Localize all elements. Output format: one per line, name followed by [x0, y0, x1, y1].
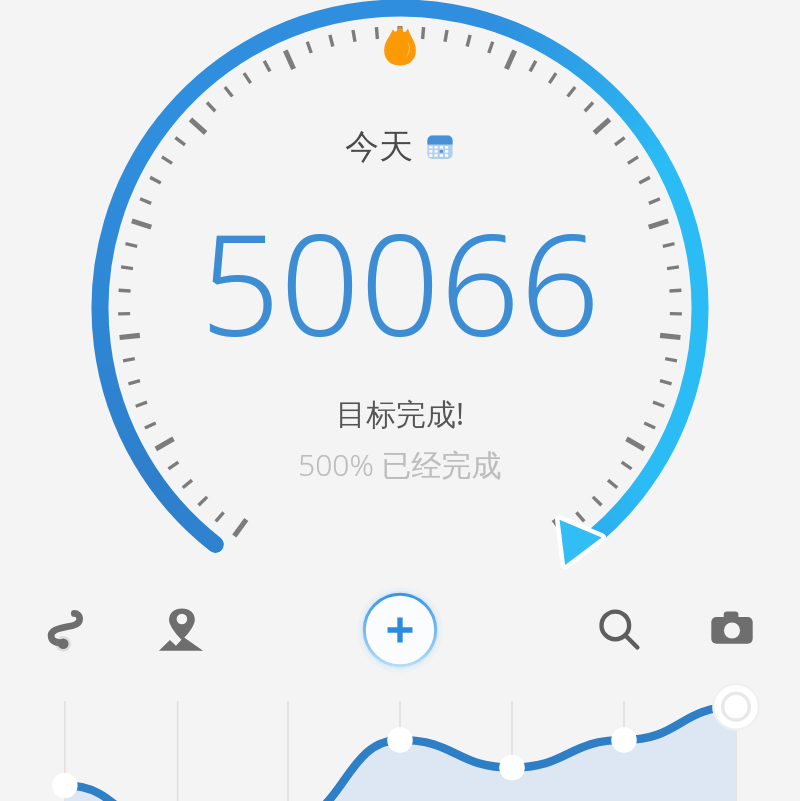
button[interactable] — [0, 690, 800, 801]
button[interactable]: Camera — [696, 594, 768, 666]
staticText: 500% 已经完成 — [298, 444, 502, 485]
staticText: 50066 — [200, 186, 600, 377]
button[interactable]: Search — [583, 594, 655, 666]
staticText: 目标完成! — [336, 393, 465, 434]
button[interactable]: Route — [30, 594, 102, 666]
staticText: 今天 — [345, 125, 413, 168]
button[interactable]: Add — [357, 587, 443, 673]
button[interactable]: Places — [145, 594, 217, 666]
